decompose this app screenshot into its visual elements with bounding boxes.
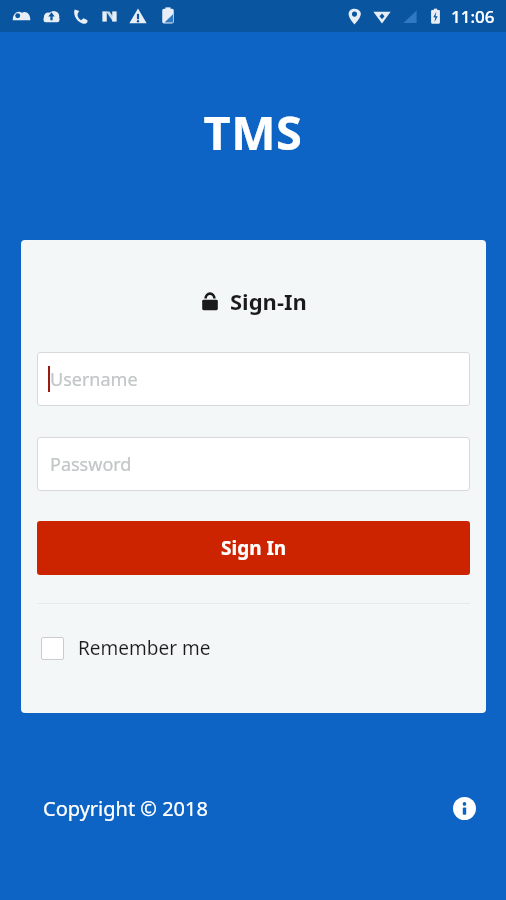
staticText: 11:06 [451,5,495,28]
staticText: TMS [0,100,506,164]
staticText: Sign-In [230,286,307,316]
staticText: Copyright © 2018 [43,795,208,822]
staticText: Sign In [221,535,287,561]
button[interactable]: About [447,791,481,825]
staticText: Password [50,452,132,477]
staticText: Remember me [78,635,211,661]
button[interactable]: Sign In [37,521,470,575]
button[interactable]: Username [37,352,470,406]
button[interactable]: Remember me [37,626,211,670]
staticText: Username [50,367,138,392]
button[interactable]: Password [37,437,470,491]
